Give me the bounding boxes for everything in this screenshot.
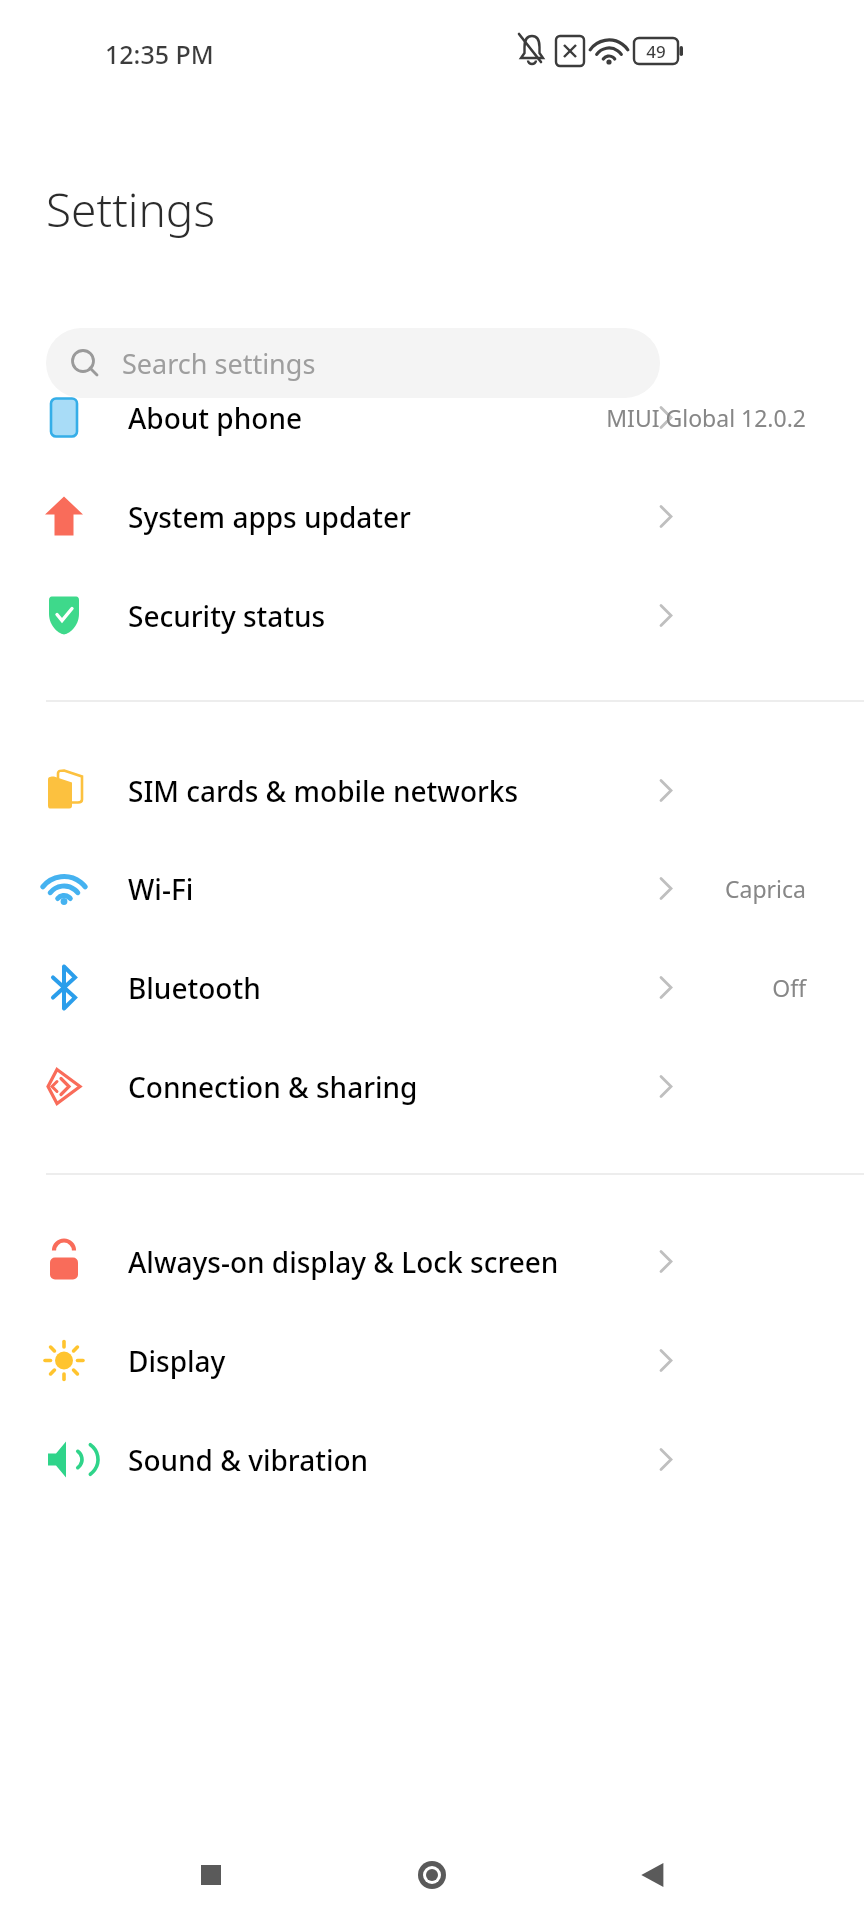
button[interactable]: SIM cards & mobile networks xyxy=(0,741,864,840)
staticText: Bluetooth xyxy=(128,969,261,1007)
button[interactable]: Connection & sharing xyxy=(0,1037,864,1136)
staticText: Off xyxy=(772,972,806,1003)
button[interactable]: Sound & vibration xyxy=(0,1410,864,1509)
button[interactable]: Security status xyxy=(0,566,864,665)
button[interactable]: About phone xyxy=(0,368,864,467)
button[interactable]: Home xyxy=(387,1830,477,1920)
staticText: SIM cards & mobile networks xyxy=(128,772,519,810)
staticText: System apps updater xyxy=(128,498,411,536)
button[interactable]: Search settings xyxy=(46,328,660,398)
staticText: 49 xyxy=(637,40,675,63)
staticText: Caprica xyxy=(725,873,806,904)
staticText: About phone xyxy=(128,399,303,437)
staticText: Connection & sharing xyxy=(128,1068,418,1106)
button[interactable]: System apps updater xyxy=(0,467,864,566)
button[interactable]: Display xyxy=(0,1311,864,1410)
staticText: MIUI Global 12.0.2 xyxy=(606,402,806,433)
button[interactable]: Recent apps xyxy=(166,1830,256,1920)
staticText: Sound & vibration xyxy=(128,1441,369,1479)
staticText: Wi-Fi xyxy=(128,870,194,908)
button[interactable]: Wi-Fi xyxy=(0,839,864,938)
button[interactable]: Always-on display & Lock screen xyxy=(0,1212,864,1311)
staticText: Always-on display & Lock screen xyxy=(128,1243,559,1281)
staticText: Security status xyxy=(128,597,326,635)
staticText: Settings xyxy=(46,178,215,241)
staticText: Display xyxy=(128,1342,226,1380)
button[interactable]: Bluetooth xyxy=(0,938,864,1037)
button[interactable]: Back xyxy=(608,1830,698,1920)
staticText: 12:35 PM xyxy=(105,37,214,71)
staticText: Search settings xyxy=(122,345,316,382)
